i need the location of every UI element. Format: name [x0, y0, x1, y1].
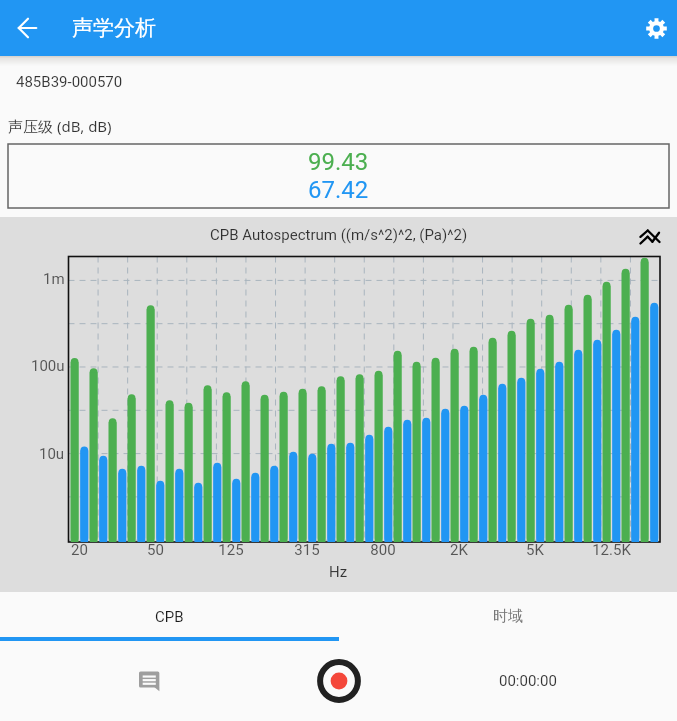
- staticText: 67.42: [308, 176, 369, 204]
- staticText: 声压级 (dB, dB): [8, 116, 112, 136]
- button[interactable]: Record: [311, 653, 367, 709]
- staticText: 50: [147, 541, 164, 559]
- staticText: 100u: [31, 357, 65, 375]
- staticText: 800: [370, 541, 396, 559]
- staticText: CPB: [155, 608, 184, 626]
- staticText: 20: [71, 541, 88, 559]
- staticText: 99.43: [308, 148, 369, 176]
- staticText: 485B39-000570: [16, 73, 123, 91]
- staticText: 2K: [450, 541, 468, 559]
- staticText: 5K: [526, 541, 544, 559]
- staticText: 315: [294, 541, 320, 559]
- button[interactable]: Collapse: [637, 224, 663, 250]
- staticText: CPB Autospectrum ((m/s^2)^2, (Pa)^2): [210, 226, 468, 244]
- staticText: 12.5K: [592, 541, 631, 559]
- staticText: 00:00:00: [499, 672, 557, 690]
- staticText: 时域: [493, 607, 523, 626]
- button[interactable]: Settings: [636, 8, 676, 48]
- button[interactable]: Comments: [126, 655, 174, 703]
- button[interactable]: Back: [8, 8, 48, 48]
- staticText: 声学分析: [72, 15, 156, 41]
- staticText: Hz: [329, 563, 348, 581]
- button[interactable]: 时域: [338, 592, 677, 641]
- staticText: 10u: [39, 445, 65, 463]
- staticText: 125: [218, 541, 244, 559]
- staticText: 1m: [43, 270, 65, 288]
- button[interactable]: CPB: [0, 592, 338, 641]
